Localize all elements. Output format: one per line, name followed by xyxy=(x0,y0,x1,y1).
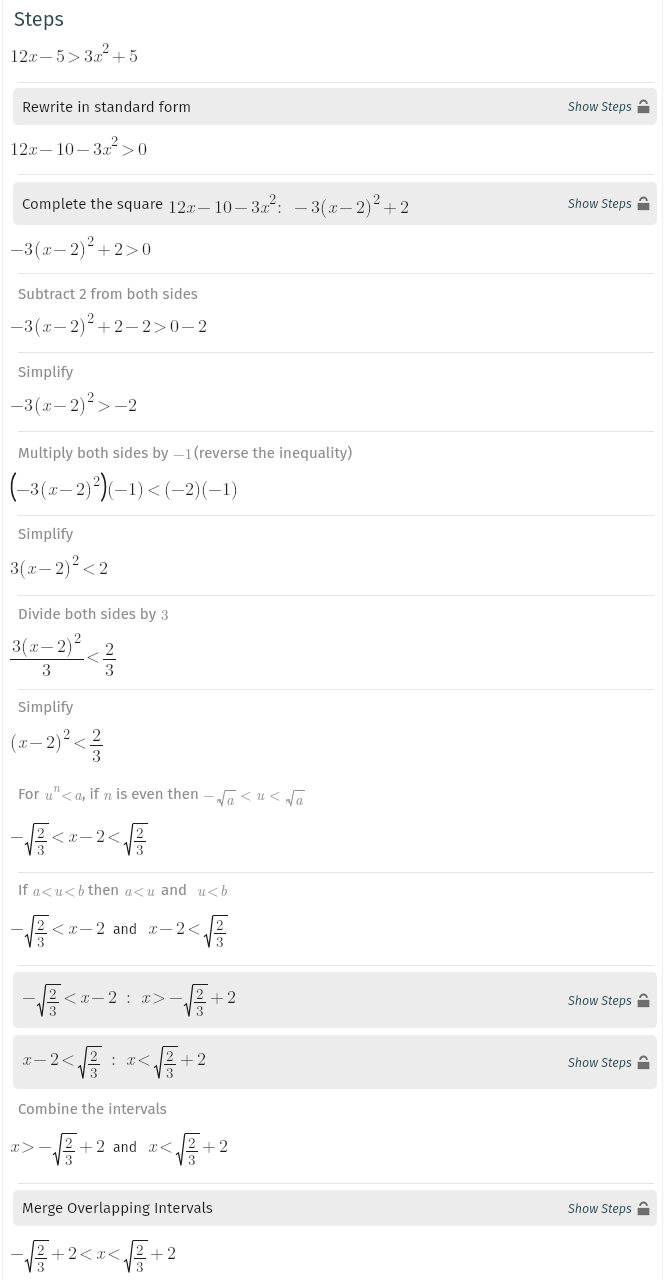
staticText: a xyxy=(124,879,132,900)
button[interactable]: Rewrite in standard form xyxy=(13,88,657,125)
staticText: and xyxy=(113,921,138,938)
staticText: 2 xyxy=(198,312,207,338)
staticText: 12 xyxy=(10,135,28,161)
staticText: 2 xyxy=(92,721,101,747)
staticText: 3 xyxy=(166,1061,174,1082)
button[interactable]: Show Steps xyxy=(562,989,657,1012)
staticText: 2 xyxy=(188,1131,196,1152)
staticText: 2 xyxy=(50,1045,59,1071)
staticText: and xyxy=(161,881,187,899)
staticText: + xyxy=(202,1132,217,1158)
staticText: Complete the square xyxy=(22,195,168,213)
staticText: < xyxy=(41,879,53,900)
staticText: 3 xyxy=(37,838,45,859)
staticText: 3 xyxy=(42,656,51,682)
staticText: − xyxy=(53,312,68,338)
staticText: For xyxy=(18,785,44,803)
staticText: + xyxy=(51,1239,66,1265)
staticText: 2) xyxy=(70,235,87,261)
staticText: < xyxy=(137,1045,152,1071)
staticText: 5 xyxy=(56,42,65,68)
staticText: 2 xyxy=(87,307,95,327)
staticText: 2 xyxy=(400,193,409,219)
button[interactable]: Show Steps xyxy=(562,192,657,215)
staticText: 0 xyxy=(170,312,179,338)
staticText: Simplify xyxy=(18,525,74,543)
other: Locked xyxy=(637,994,650,1008)
button[interactable]: Complete the square xyxy=(13,182,657,225)
staticText: − xyxy=(39,135,54,161)
staticText: 2 xyxy=(167,1239,176,1265)
staticText: : xyxy=(126,983,132,1009)
button[interactable]: Show Steps xyxy=(562,1197,657,1220)
staticText: −3 xyxy=(16,475,40,501)
staticText: 3 xyxy=(92,742,101,768)
staticText: x xyxy=(96,1239,105,1264)
staticText: 2 xyxy=(37,821,45,842)
staticText: 2) xyxy=(55,554,72,580)
staticText: − xyxy=(181,312,196,338)
staticText: x xyxy=(28,135,37,160)
staticText: < xyxy=(207,879,219,900)
staticText: 3 xyxy=(216,930,224,951)
staticText: > xyxy=(125,235,140,261)
staticText: 2 xyxy=(197,1045,206,1071)
staticText: 2 xyxy=(269,188,277,208)
staticText: x xyxy=(68,822,77,847)
staticText: − xyxy=(33,1045,48,1071)
other: Locked xyxy=(637,197,650,211)
staticText: Simplify xyxy=(18,363,74,381)
staticText: < xyxy=(64,879,76,900)
staticText: ( xyxy=(10,728,18,754)
button[interactable]: − xyxy=(13,972,657,1028)
staticText: 2 xyxy=(373,188,381,208)
staticText: + xyxy=(79,1132,94,1158)
staticText: − xyxy=(10,822,25,848)
staticText: a xyxy=(74,783,82,804)
staticText: x xyxy=(42,235,51,260)
staticText: 2 xyxy=(90,1044,98,1065)
staticText: 2 xyxy=(96,822,105,848)
button[interactable]: Show Steps xyxy=(562,1051,657,1074)
staticText: b xyxy=(77,879,84,900)
staticText: : xyxy=(111,1045,117,1071)
staticText: Subtract 2 from both sides xyxy=(18,285,198,303)
staticText: + xyxy=(97,235,112,261)
button[interactable]: Show Steps xyxy=(562,95,657,118)
staticText: (−2)(−1) xyxy=(164,475,239,501)
staticText: : xyxy=(277,193,283,219)
staticText: 10 xyxy=(214,193,232,219)
staticText: ( xyxy=(19,554,27,580)
staticText: 3 xyxy=(136,838,144,859)
staticText: x xyxy=(68,914,77,939)
staticText: u xyxy=(44,783,53,804)
staticText: < xyxy=(61,1045,76,1071)
staticText: < xyxy=(159,1132,174,1158)
staticText: 3( xyxy=(12,632,29,658)
staticText: > xyxy=(97,391,112,417)
staticText: ( xyxy=(40,475,48,501)
staticText: − xyxy=(79,822,94,848)
staticText: < xyxy=(269,783,281,804)
staticText: < xyxy=(51,914,66,940)
staticText: + xyxy=(150,1239,165,1265)
staticText: x xyxy=(22,1045,31,1070)
staticText: − xyxy=(294,193,309,219)
staticText: Simplify xyxy=(18,698,74,716)
staticText: 2 xyxy=(227,983,236,1009)
staticText: ( xyxy=(34,235,42,261)
staticText: ( xyxy=(34,391,42,417)
staticText: 2 xyxy=(96,914,105,940)
staticText: 12 xyxy=(168,193,186,219)
staticText: 2 xyxy=(111,130,119,150)
staticText: > xyxy=(153,312,168,338)
staticText: Show Steps xyxy=(568,1201,632,1216)
staticText: Show Steps xyxy=(568,993,632,1008)
staticText: < xyxy=(107,1239,122,1265)
staticText: − xyxy=(38,554,53,580)
staticText: + xyxy=(383,193,398,219)
staticText: If xyxy=(18,881,32,899)
staticText: − xyxy=(159,914,174,940)
button[interactable]: Merge Overlapping Intervals xyxy=(13,1190,657,1226)
button[interactable]: x xyxy=(13,1035,657,1089)
